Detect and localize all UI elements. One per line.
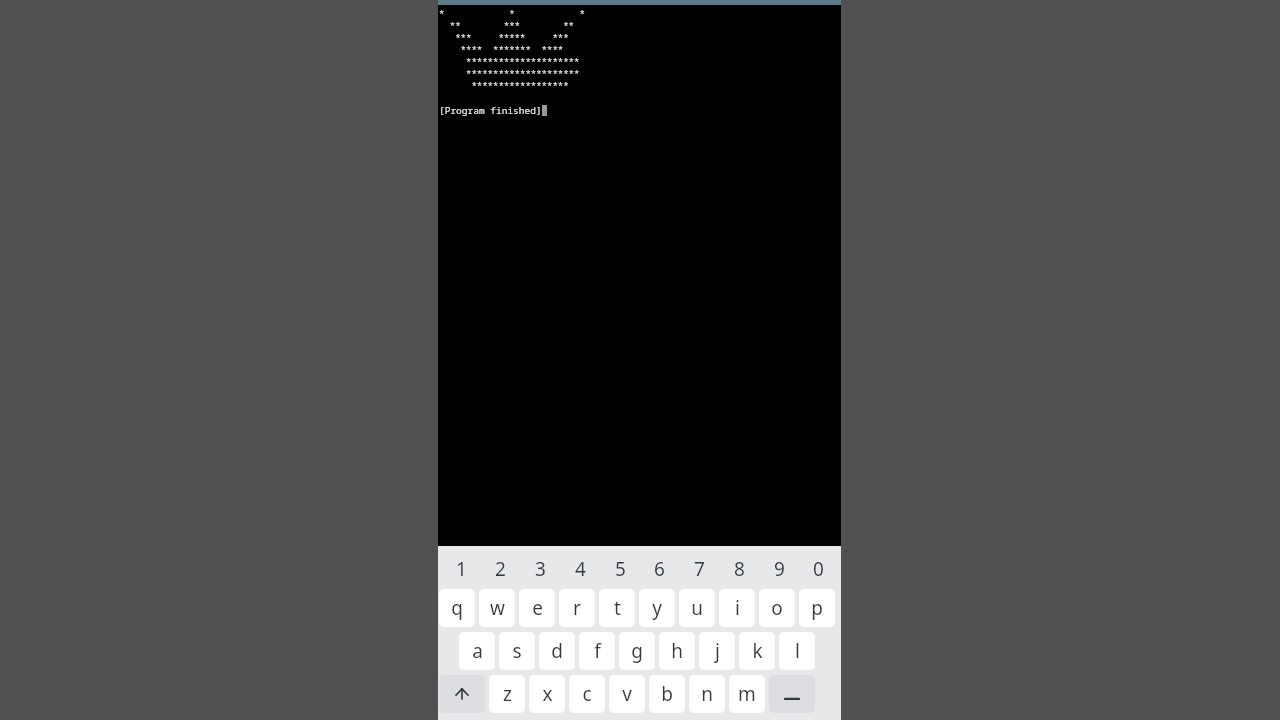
staticText: z: [503, 681, 512, 707]
button[interactable]: q: [439, 589, 475, 627]
button[interactable]: u: [679, 589, 715, 627]
button[interactable]: l: [779, 632, 815, 670]
button[interactable]: y: [639, 589, 675, 627]
staticText: v: [622, 681, 632, 707]
staticText: n: [701, 681, 713, 707]
button[interactable]: 1: [443, 554, 479, 583]
staticText: *********************: [439, 55, 580, 67]
staticText: j: [715, 638, 720, 664]
button[interactable]: 3: [522, 554, 558, 583]
button[interactable]: t: [599, 589, 635, 627]
staticText: [Program finished]: [439, 104, 542, 117]
button[interactable]: 5: [602, 554, 638, 583]
staticText: * * *: [439, 7, 585, 19]
staticText: 1: [456, 556, 467, 582]
staticText: l: [795, 638, 800, 664]
staticText: w: [490, 595, 505, 621]
button[interactable]: k: [739, 632, 775, 670]
button[interactable]: 7: [681, 554, 717, 583]
staticText: **** ******* ****: [439, 43, 564, 55]
button[interactable]: b: [649, 675, 685, 713]
staticText: 6: [654, 556, 665, 582]
button[interactable]: z: [489, 675, 525, 713]
button[interactable]: 2: [482, 554, 518, 583]
staticText: o: [771, 595, 783, 621]
button[interactable]: p: [799, 589, 835, 627]
staticText: 2: [495, 556, 506, 582]
staticText: a: [472, 638, 483, 664]
button[interactable]: i: [719, 589, 755, 627]
button[interactable]: v: [609, 675, 645, 713]
staticText: 7: [694, 556, 705, 582]
button[interactable]: e: [519, 589, 555, 627]
staticText: p: [811, 595, 823, 621]
staticText: 5: [615, 556, 626, 582]
staticText: g: [631, 638, 643, 664]
button[interactable]: 6: [641, 554, 677, 583]
staticText: 3: [535, 556, 546, 582]
button[interactable]: o: [759, 589, 795, 627]
staticText: u: [691, 595, 703, 621]
button[interactable]: 9: [761, 554, 797, 583]
button[interactable]: Backspace: [769, 675, 815, 713]
staticText: x: [542, 681, 553, 707]
staticText: 4: [575, 556, 586, 582]
button[interactable]: 4: [562, 554, 598, 583]
button[interactable]: r: [559, 589, 595, 627]
staticText: *********************: [439, 67, 580, 79]
button[interactable]: 8: [721, 554, 757, 583]
button[interactable]: g: [619, 632, 655, 670]
staticText: e: [532, 595, 543, 621]
staticText: *** ***** ***: [439, 31, 569, 43]
staticText: q: [451, 595, 463, 621]
staticText: b: [661, 681, 673, 707]
button[interactable]: a: [459, 632, 495, 670]
button[interactable]: 0: [800, 554, 836, 583]
staticText: k: [752, 638, 763, 664]
staticText: h: [671, 638, 683, 664]
staticText: ******************: [439, 79, 569, 91]
staticText: r: [573, 595, 581, 621]
staticText: i: [735, 595, 740, 621]
button[interactable]: d: [539, 632, 575, 670]
button[interactable]: x: [529, 675, 565, 713]
staticText: ** *** **: [439, 19, 575, 31]
staticText: 9: [774, 556, 785, 582]
button[interactable]: Shift: [439, 675, 485, 713]
button[interactable]: n: [689, 675, 725, 713]
button[interactable]: c: [569, 675, 605, 713]
staticText: 0: [813, 556, 824, 582]
staticText: f: [594, 638, 601, 664]
button[interactable]: w: [479, 589, 515, 627]
button[interactable]: j: [699, 632, 735, 670]
staticText: s: [512, 638, 522, 664]
staticText: d: [551, 638, 563, 664]
button[interactable]: m: [729, 675, 765, 713]
staticText: y: [652, 595, 662, 621]
staticText: t: [614, 595, 621, 621]
staticText: m: [738, 681, 756, 707]
button[interactable]: f: [579, 632, 615, 670]
button[interactable]: h: [659, 632, 695, 670]
staticText: c: [582, 681, 592, 707]
staticText: 8: [734, 556, 745, 582]
button[interactable]: s: [499, 632, 535, 670]
